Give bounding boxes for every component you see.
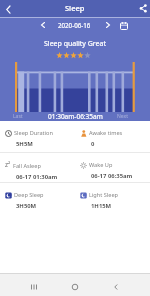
- staticText: 0: [91, 140, 95, 148]
- staticText: Wake Up: [89, 161, 113, 169]
- button[interactable]: [0, 51, 150, 60]
- button[interactable]: z²: [0, 153, 75, 182]
- staticText: Awake times: [89, 129, 123, 137]
- button[interactable]: Deep Sleep: [0, 183, 75, 212]
- button[interactable]: [50, 273, 100, 296]
- staticText: 1H15M: [91, 202, 112, 210]
- staticText: Sleep: [65, 3, 85, 13]
- staticText: 06-17 01:30am: [16, 173, 58, 181]
- button[interactable]: Sleep Duration: [0, 121, 75, 152]
- staticText: 06-17 06:35am: [91, 172, 133, 180]
- staticText: 5H5M: [16, 140, 33, 148]
- staticText: Deep Sleep: [14, 191, 44, 199]
- button[interactable]: Light Sleep: [75, 183, 150, 212]
- button[interactable]: [100, 273, 150, 296]
- button[interactable]: [0, 1, 14, 18]
- button[interactable]: Awake times: [75, 121, 150, 152]
- staticText: Fall Asleep: [13, 162, 41, 170]
- staticText: Sleep Duration: [14, 129, 53, 137]
- button[interactable]: [136, 1, 150, 18]
- button[interactable]: [0, 273, 50, 296]
- button[interactable]: [119, 21, 129, 31]
- button[interactable]: Wake Up: [75, 153, 150, 182]
- button[interactable]: [103, 20, 113, 30]
- staticText: Light Sleep: [89, 191, 119, 199]
- staticText: 2020-06-16: [58, 21, 91, 29]
- button[interactable]: Last: [13, 113, 23, 120]
- staticText: Sleep quality Great: [0, 39, 150, 49]
- staticText: 01:30am-06:35am: [48, 112, 103, 121]
- staticText: z²: [5, 160, 11, 169]
- staticText: 3H50M: [16, 202, 37, 210]
- button[interactable]: [38, 20, 48, 30]
- button[interactable]: Next: [117, 113, 128, 120]
